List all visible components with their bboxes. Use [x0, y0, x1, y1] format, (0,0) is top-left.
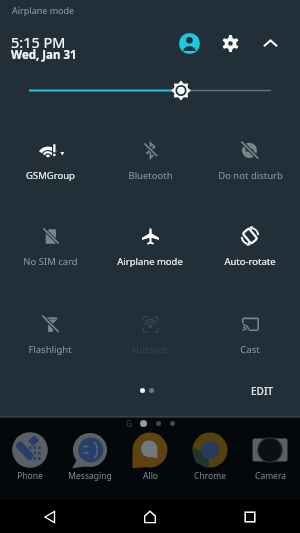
staticText: No SIM card [23, 255, 78, 268]
staticText: EDIT [251, 384, 274, 398]
staticText: 5:15 PM [11, 32, 66, 52]
button[interactable]: Home [100, 500, 200, 533]
button[interactable]: Collapse [254, 27, 286, 59]
button[interactable]: Do not disturb [200, 141, 300, 182]
staticText: Hotspot [132, 343, 168, 356]
button[interactable]: Settings [214, 27, 246, 59]
staticText: Wed, Jan 31 [11, 47, 77, 63]
staticText: Camera [255, 470, 286, 482]
staticText: Messaging [68, 470, 112, 482]
staticText: Cast [240, 343, 260, 356]
staticText: Phone [17, 470, 43, 482]
staticText: GSMGroup [26, 169, 75, 182]
button[interactable]: No SIM card [0, 227, 100, 268]
button[interactable]: Back [0, 500, 100, 533]
button[interactable]: Camera [240, 431, 300, 482]
staticText: Airplane mode [117, 255, 183, 268]
button[interactable]: Hotspot [100, 315, 200, 356]
button[interactable]: Chrome [180, 431, 240, 482]
button[interactable]: Auto-rotate [200, 227, 300, 268]
button[interactable]: Brightness [0, 80, 300, 102]
button[interactable]: Recent apps [200, 500, 300, 533]
button[interactable]: User profile [173, 27, 205, 59]
staticText: Chrome [194, 470, 226, 482]
staticText: Allo [143, 470, 158, 482]
button[interactable]: EDIT [243, 379, 282, 403]
button[interactable]: Phone [0, 431, 60, 482]
staticText: Do not disturb [218, 169, 283, 182]
staticText: Bluetooth [128, 169, 173, 182]
staticText: Airplane mode [12, 4, 75, 16]
button[interactable]: Messaging [60, 431, 120, 482]
button[interactable]: Bluetooth [100, 141, 200, 182]
button[interactable]: GSMGroup [0, 141, 100, 182]
button[interactable]: Cast [200, 315, 300, 356]
staticText: Flashlight [28, 343, 72, 356]
button[interactable]: Airplane mode [100, 227, 200, 268]
button[interactable]: Allo [120, 431, 180, 482]
staticText: Auto-rotate [224, 255, 276, 268]
button[interactable]: Flashlight [0, 315, 100, 356]
staticText: G [126, 418, 133, 430]
